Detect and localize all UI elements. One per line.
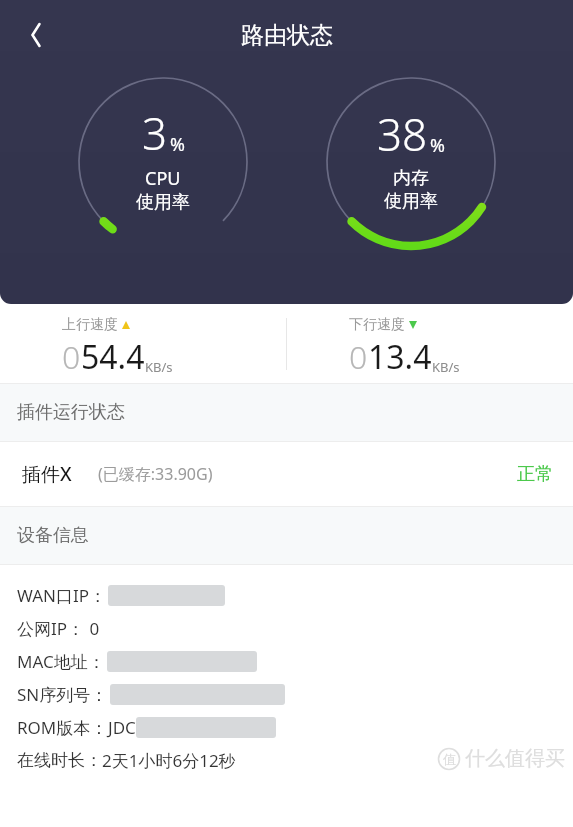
staticText: ROM版本： xyxy=(17,716,108,739)
staticText: JDC xyxy=(108,716,136,739)
staticText: 正常 xyxy=(517,463,553,486)
staticText: 0 xyxy=(349,335,368,379)
staticText: 值 xyxy=(443,751,456,767)
staticText: 54.4 xyxy=(81,335,145,379)
button[interactable]: 插件X xyxy=(0,442,573,506)
staticText: 13.4 xyxy=(368,335,432,379)
staticText: 插件运行状态 xyxy=(17,401,125,424)
staticText: 路由状态 xyxy=(241,21,333,50)
staticText: 内存 xyxy=(393,167,429,190)
staticText: 0 xyxy=(85,617,100,640)
staticText: SN序列号： xyxy=(17,683,108,706)
staticText: 上行速度 xyxy=(62,316,118,334)
staticText: 设备信息 xyxy=(17,524,89,547)
staticText: 使用率 xyxy=(384,190,438,213)
staticText: 公网IP： xyxy=(17,617,85,640)
button[interactable]: 上行速度 xyxy=(0,304,286,379)
staticText: (已缓存:33.90G) xyxy=(98,463,213,485)
staticText: 在线时长： xyxy=(17,750,102,771)
button[interactable]: 下行速度 xyxy=(287,304,573,379)
staticText: 2天1小时6分12秒 xyxy=(102,749,236,772)
staticText: KB/s xyxy=(432,358,460,376)
staticText: 0 xyxy=(62,335,81,379)
staticText: CPU xyxy=(145,166,181,191)
staticText: % xyxy=(430,133,445,158)
staticText: 38 xyxy=(377,104,428,164)
staticText: KB/s xyxy=(145,358,173,376)
staticText: MAC地址： xyxy=(17,650,105,673)
staticText: 插件X xyxy=(22,461,72,487)
button[interactable]: Back xyxy=(12,11,60,59)
staticText: 下行速度 xyxy=(349,316,405,334)
staticText: % xyxy=(170,132,185,157)
staticText: 什么值得买 xyxy=(465,746,565,771)
staticText: WAN口IP： xyxy=(17,584,106,607)
staticText: 使用率 xyxy=(136,191,190,214)
staticText: 3 xyxy=(142,103,168,163)
